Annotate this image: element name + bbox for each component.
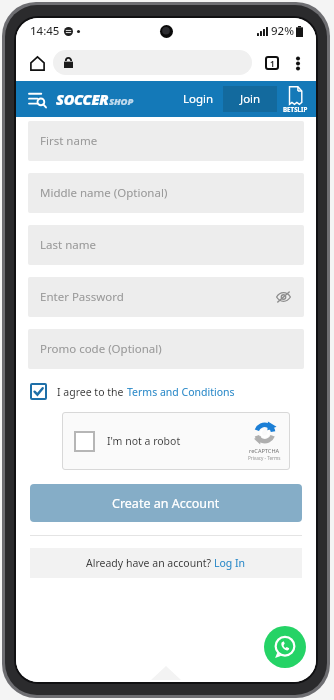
staticText: I'm not a robot <box>107 434 181 448</box>
button[interactable]: Tabs <box>259 50 285 76</box>
staticText: Create an Account <box>112 495 220 512</box>
staticText: 92% <box>271 23 294 39</box>
staticText: Last name <box>40 237 96 253</box>
staticText: Promo code (Optional) <box>40 341 162 357</box>
staticText: Middle name (Optional) <box>40 185 168 201</box>
button[interactable]: Middle name (Optional) <box>28 173 304 213</box>
staticText: 1 <box>270 58 275 69</box>
button[interactable]: More options <box>286 51 310 75</box>
staticText: SOCCER <box>56 89 109 109</box>
staticText: 14:45 <box>30 23 60 39</box>
button[interactable]: SOCCER <box>56 87 134 111</box>
button[interactable]: Already have an account? <box>30 548 302 578</box>
button[interactable]: Last name <box>28 225 304 265</box>
button[interactable]: Login <box>177 85 220 113</box>
button[interactable]: Create an Account <box>30 484 302 522</box>
button[interactable]: First name <box>28 121 304 161</box>
staticText: BETSLIP <box>283 105 308 113</box>
button[interactable]: Menu and search <box>24 86 50 112</box>
staticText: Join <box>240 91 261 107</box>
staticText: Already have an account? <box>86 556 214 570</box>
button[interactable]: I'm not a robot <box>62 412 290 470</box>
staticText: reCAPTCHA <box>249 447 280 455</box>
staticText: Terms and Conditions <box>127 385 235 399</box>
staticText: Privacy - Terms <box>248 455 281 461</box>
staticText: Enter Password <box>40 289 124 305</box>
button[interactable]: Promo code (Optional) <box>28 329 304 369</box>
button[interactable]: Join <box>223 86 277 112</box>
button[interactable]: Chat on WhatsApp <box>264 626 306 668</box>
button[interactable]: Enter Password <box>28 277 304 317</box>
staticText: SHOP <box>109 95 134 108</box>
staticText: Log In <box>214 556 246 570</box>
staticText: Login <box>183 91 214 107</box>
button[interactable]: Betslip <box>283 81 316 117</box>
button[interactable]: I agree to the <box>30 383 235 400</box>
button[interactable]: Home <box>24 50 50 76</box>
staticText: First name <box>40 133 98 149</box>
button[interactable]: Address bar <box>53 50 252 75</box>
staticText: I agree to the <box>57 385 127 399</box>
